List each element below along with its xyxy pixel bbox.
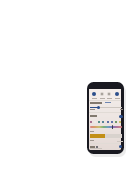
button[interactable]: Quick action 3 — [107, 92, 111, 96]
button[interactable]: Quick action 2 — [100, 92, 104, 96]
button[interactable]: Quick action 1 — [92, 92, 96, 96]
button[interactable]: Quick action 4 — [115, 92, 119, 96]
button[interactable]: Toggle — [119, 115, 123, 118]
button[interactable]: Brightness — [97, 106, 100, 109]
button[interactable]: Apply — [119, 145, 122, 148]
button[interactable]: Hue — [90, 126, 122, 128]
